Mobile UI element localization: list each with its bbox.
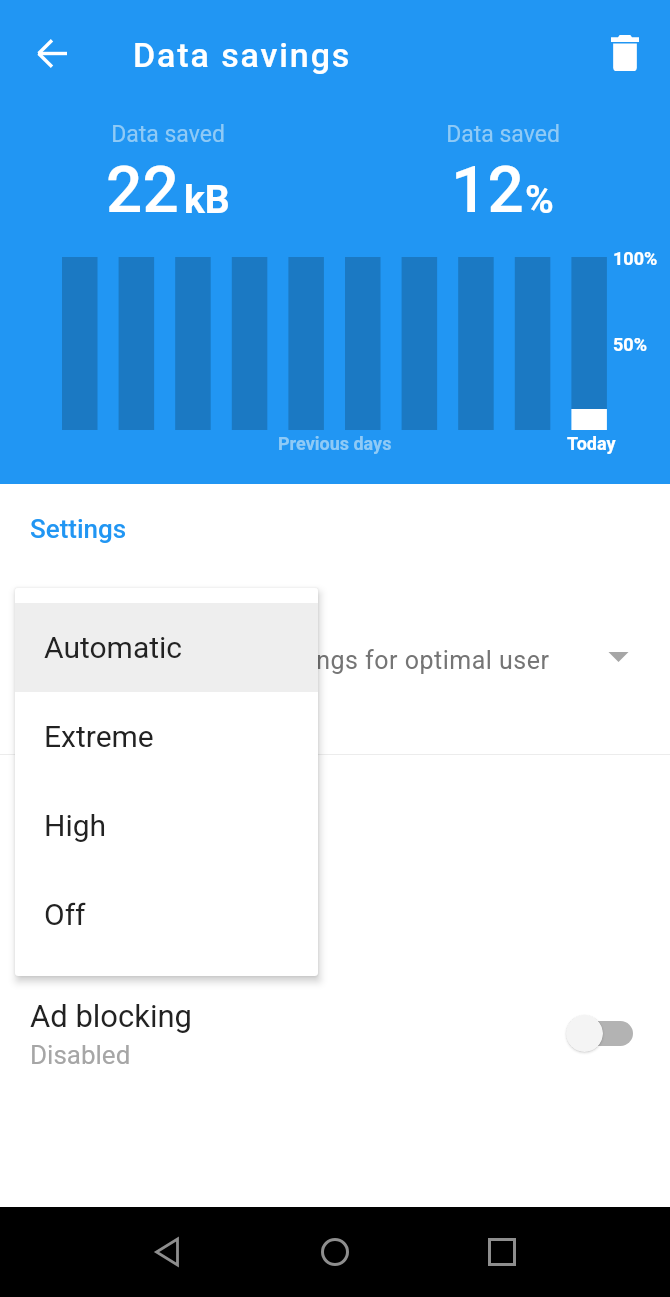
staticText: Data savings xyxy=(133,35,352,75)
staticText: Today xyxy=(567,433,616,454)
button[interactable]: Delete xyxy=(595,23,655,83)
button[interactable]: Extreme xyxy=(15,692,318,781)
staticText: % xyxy=(525,177,554,223)
button[interactable]: Off xyxy=(15,870,318,959)
button[interactable]: Automatically adjust settings for optima… xyxy=(0,610,670,710)
staticText: Extreme xyxy=(44,719,154,754)
button[interactable]: Home xyxy=(290,1207,380,1297)
staticText: Data saved xyxy=(111,121,225,148)
staticText: 100% xyxy=(613,248,658,269)
staticText: Ad blocking xyxy=(30,998,193,1034)
staticText: kB xyxy=(184,177,230,223)
staticText: Automatically adjust settings for optima… xyxy=(21,646,550,675)
button[interactable]: Back xyxy=(122,1207,212,1297)
button[interactable]: Recents xyxy=(457,1207,547,1297)
staticText: Automatic xyxy=(44,630,183,665)
staticText: Settings xyxy=(30,514,127,544)
staticText: Disabled xyxy=(30,1040,131,1070)
staticText: 22 xyxy=(106,153,179,228)
staticText: 50% xyxy=(613,334,647,355)
button[interactable]: Ad blocking xyxy=(0,975,670,1087)
button[interactable]: Back xyxy=(22,23,82,83)
staticText: High xyxy=(44,808,107,843)
staticText: Data saved xyxy=(446,121,560,148)
staticText: Off xyxy=(44,897,86,932)
staticText: Previous days xyxy=(278,433,392,454)
staticText: 12 xyxy=(451,153,524,228)
button[interactable]: High xyxy=(15,781,318,870)
button[interactable]: Automatic xyxy=(15,603,318,692)
button[interactable]: Ad blocking toggle xyxy=(563,1012,643,1054)
